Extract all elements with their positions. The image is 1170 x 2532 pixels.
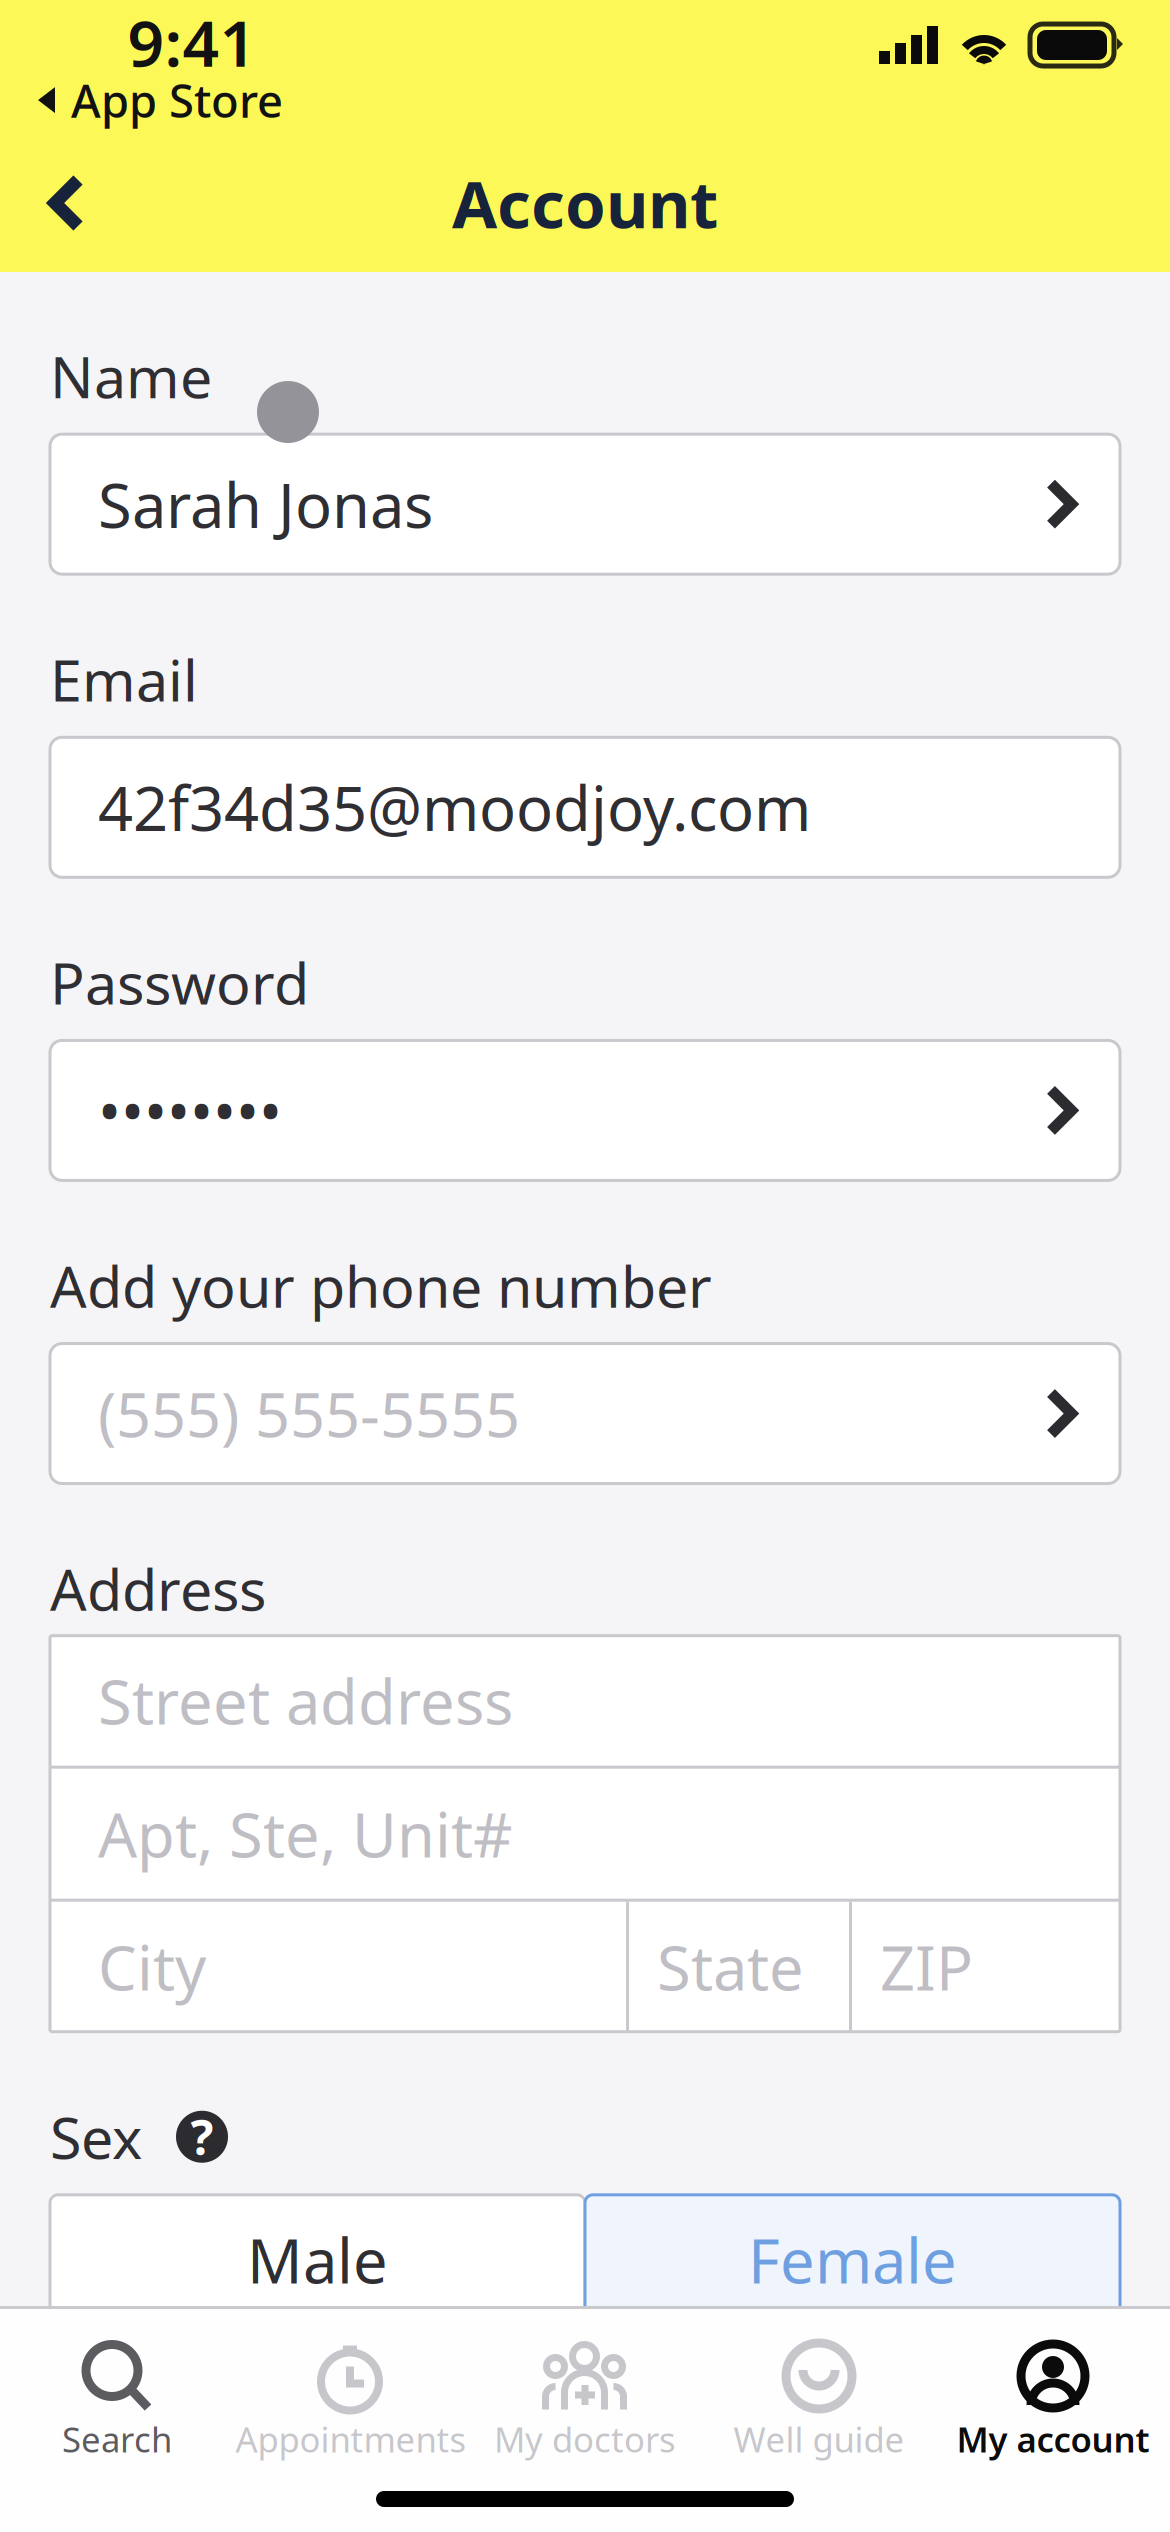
staticText: 9:41: [127, 0, 256, 84]
button[interactable]: Search: [0, 2338, 234, 2462]
staticText: App Store: [71, 70, 283, 130]
button[interactable]: Male: [50, 2195, 585, 2325]
staticText: Address: [50, 1550, 266, 1627]
staticText: My doctors: [494, 2416, 676, 2462]
button[interactable]: ••••••••: [50, 1040, 1120, 1180]
staticText: City: [98, 1926, 206, 2007]
button[interactable]: 42f34d35@moodjoy.com: [50, 737, 1120, 877]
button[interactable]: (555) 555-5555: [50, 1343, 1120, 1483]
staticText: Sex: [50, 2099, 142, 2175]
button[interactable]: Female: [585, 2195, 1120, 2325]
staticText: Street address: [98, 1660, 513, 1741]
button[interactable]: Back: [0, 153, 115, 253]
button[interactable]: State: [629, 1902, 849, 2032]
staticText: Name: [50, 338, 212, 414]
staticText: ••••••••: [98, 1070, 282, 1151]
button[interactable]: Help: what does Sex mean: [170, 2099, 234, 2175]
staticText: Male: [247, 2219, 388, 2300]
staticText: My account: [956, 2416, 1149, 2462]
staticText: Well guide: [733, 2416, 904, 2462]
staticText: Add your phone number: [50, 1247, 712, 1323]
staticText: Account: [452, 160, 718, 246]
staticText: State: [657, 1926, 804, 2007]
button[interactable]: My account: [936, 2338, 1170, 2462]
staticText: Search: [62, 2416, 172, 2462]
staticText: ZIP: [880, 1926, 973, 2007]
button[interactable]: Sarah Jonas: [50, 434, 1120, 574]
button[interactable]: Street address: [50, 1636, 1120, 1766]
button[interactable]: ZIP: [852, 1902, 1120, 2032]
button[interactable]: Appointments: [234, 2338, 468, 2462]
staticText: Apt, Ste, Unit#: [98, 1793, 513, 1874]
staticText: Sarah Jonas: [98, 463, 433, 545]
button[interactable]: Well guide: [702, 2338, 936, 2462]
staticText: 42f34d35@moodjoy.com: [98, 766, 811, 848]
button[interactable]: My doctors: [468, 2338, 702, 2462]
button[interactable]: Apt, Ste, Unit#: [50, 1769, 1120, 1899]
staticText: ?: [190, 2105, 213, 2169]
staticText: Email: [50, 641, 198, 717]
staticText: Female: [748, 2219, 957, 2300]
staticText: Appointments: [235, 2416, 466, 2462]
staticText: (555) 555-5555: [98, 1373, 520, 1454]
staticText: Password: [50, 944, 309, 1020]
button[interactable]: City: [50, 1902, 626, 2032]
